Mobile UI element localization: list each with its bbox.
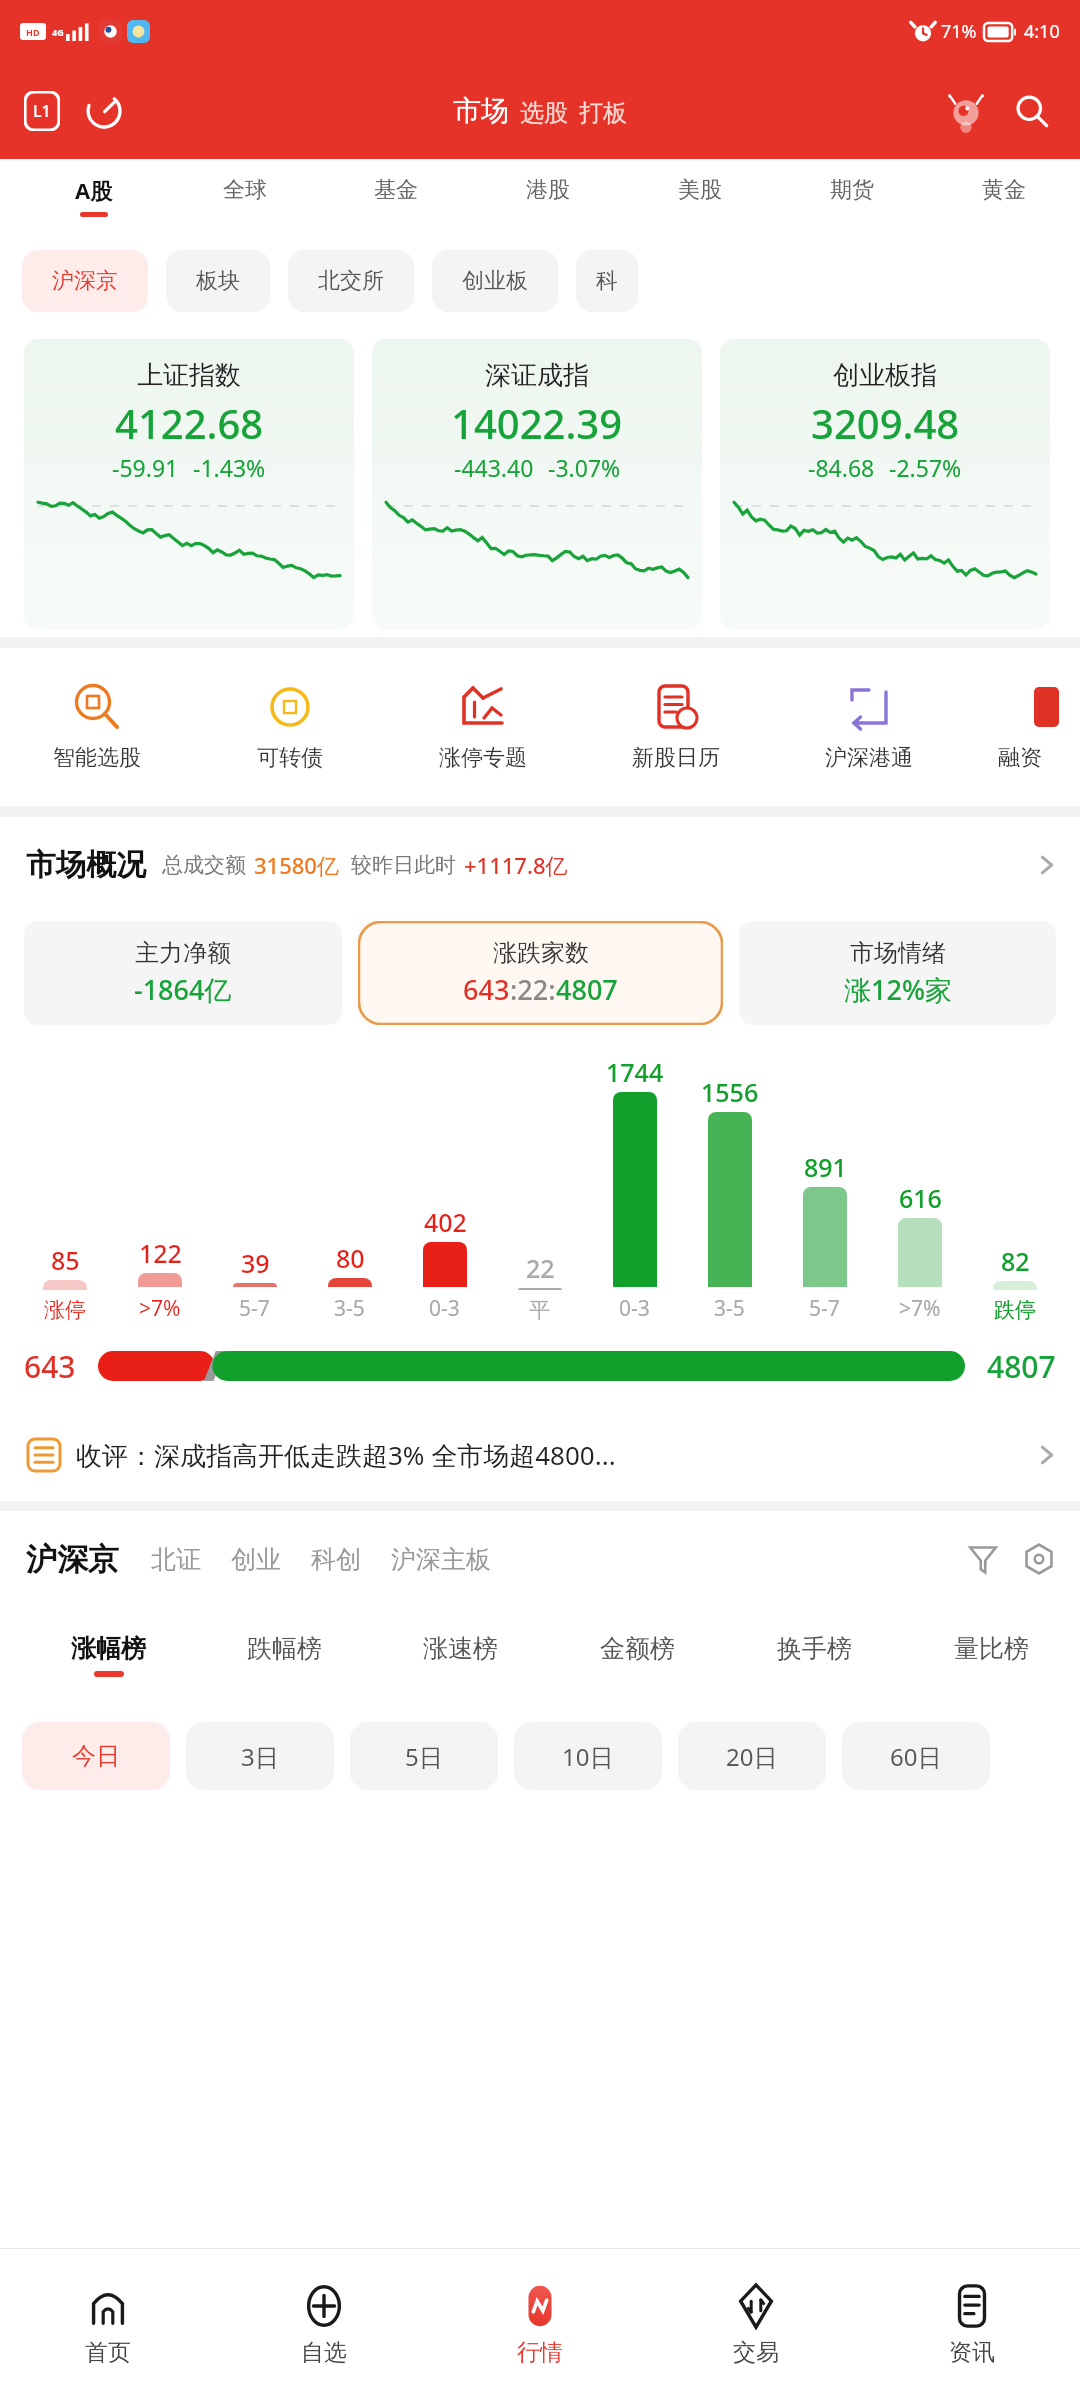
staticText: 0-3	[619, 1294, 650, 1323]
staticText: 39	[241, 1246, 270, 1280]
button[interactable]: 期货	[776, 159, 928, 232]
button[interactable]: A股	[18, 159, 169, 232]
button[interactable]: 涨速榜	[372, 1607, 549, 1703]
button[interactable]: 港股	[472, 159, 624, 232]
button[interactable]: 沪深京	[26, 1540, 119, 1579]
staticText: 平	[529, 1297, 550, 1323]
button[interactable]: 收评：深成指高开低走跌超3% 全市场超4800...	[0, 1409, 1080, 1501]
button[interactable]: 主力净额	[24, 921, 342, 1025]
button[interactable]: 融资	[965, 648, 1075, 806]
staticText: 市场概况	[26, 846, 146, 884]
button[interactable]: 深证成指	[372, 339, 702, 629]
staticText: 跌停	[994, 1297, 1036, 1323]
staticText: 4122.68	[115, 396, 264, 450]
staticText: 黄金	[982, 176, 1026, 204]
staticText: 3-5	[714, 1294, 745, 1323]
button[interactable]: 首页	[0, 2249, 216, 2400]
staticText: 量比榜	[954, 1633, 1029, 1664]
button[interactable]: 5日	[350, 1722, 498, 1790]
staticText: 3日	[241, 1740, 279, 1773]
button[interactable]: 沪深主板	[391, 1544, 491, 1575]
button[interactable]: Filter	[960, 1536, 1006, 1582]
button[interactable]: 可转债	[193, 648, 386, 806]
staticText: >7%	[139, 1294, 181, 1323]
staticText: 31580亿	[254, 850, 339, 880]
staticText: 全球	[223, 176, 267, 204]
staticText: 收评：深成指高开低走跌超3% 全市场超4800...	[76, 1437, 616, 1473]
button[interactable]: 20日	[678, 1722, 826, 1790]
button[interactable]: 市场概况	[0, 817, 1080, 913]
button[interactable]: 智能选股	[0, 648, 193, 806]
staticText: 14022.39	[451, 396, 623, 450]
staticText: 80	[336, 1241, 365, 1275]
button[interactable]: 跌幅榜	[196, 1607, 372, 1703]
button[interactable]: Settings	[1016, 1536, 1062, 1582]
button[interactable]: 全球	[169, 159, 320, 232]
button[interactable]: 交易	[648, 2249, 864, 2400]
staticText: 沪深港通	[825, 744, 913, 772]
button[interactable]: 10日	[514, 1722, 662, 1790]
button[interactable]: Assistant	[940, 85, 992, 137]
staticText: 基金	[374, 176, 418, 204]
staticText: -3.07%	[548, 452, 621, 483]
staticText: 82	[1001, 1244, 1030, 1278]
staticText: 1556	[701, 1075, 759, 1109]
button[interactable]: 科	[576, 250, 638, 312]
button[interactable]: 自选	[216, 2249, 432, 2400]
button[interactable]: 沪深港通	[772, 648, 965, 806]
staticText: 涨幅榜	[71, 1633, 146, 1664]
button[interactable]: 今日	[22, 1722, 170, 1790]
button[interactable]: 北交所	[288, 250, 414, 312]
button[interactable]: 新股日历	[579, 648, 772, 806]
button[interactable]: 60日	[842, 1722, 990, 1790]
staticText: 首页	[85, 2338, 131, 2367]
button[interactable]: 上证指数	[24, 339, 354, 629]
button[interactable]: 3日	[186, 1722, 334, 1790]
staticText: 换手榜	[777, 1633, 852, 1664]
staticText: 1744	[606, 1055, 664, 1089]
staticText: +1117.8亿	[464, 850, 568, 880]
staticText: 科	[596, 267, 618, 295]
staticText: 主力净额	[135, 938, 231, 968]
button[interactable]: Level 1	[22, 89, 62, 133]
button[interactable]: 沪深京	[22, 250, 148, 312]
button[interactable]: 量比榜	[903, 1607, 1080, 1703]
button[interactable]: 涨幅榜	[20, 1607, 196, 1703]
button[interactable]: 科创	[311, 1544, 361, 1575]
button[interactable]: 资讯	[864, 2249, 1080, 2400]
staticText: 涨停	[44, 1297, 86, 1323]
staticText: 涨12%家	[844, 971, 952, 1008]
button[interactable]: 打板	[579, 98, 627, 128]
staticText: 美股	[678, 176, 722, 204]
staticText: -84.68	[808, 452, 875, 483]
button[interactable]: Search	[1006, 85, 1058, 137]
button[interactable]: 涨停专题	[386, 648, 579, 806]
button[interactable]: 创业	[231, 1544, 281, 1575]
button[interactable]: 换手榜	[726, 1607, 903, 1703]
staticText: 港股	[526, 176, 570, 204]
staticText: 616	[899, 1181, 942, 1215]
button[interactable]: 基金	[320, 159, 472, 232]
staticText: 643	[463, 971, 510, 1008]
button[interactable]: 美股	[624, 159, 776, 232]
button[interactable]: 创业板	[432, 250, 558, 312]
staticText: 3209.48	[811, 396, 960, 450]
button[interactable]: 涨跌家数	[358, 921, 723, 1025]
button[interactable]: 创业板指	[720, 339, 1050, 629]
button[interactable]: Night mode	[82, 89, 126, 133]
button[interactable]: 市场情绪	[739, 921, 1056, 1025]
staticText: 5日	[405, 1740, 443, 1773]
staticText: 4G	[52, 26, 64, 38]
staticText: 0-3	[429, 1294, 460, 1323]
button[interactable]: 黄金	[928, 159, 1080, 232]
staticText: 71%	[941, 19, 977, 44]
button[interactable]: 选股	[520, 98, 568, 128]
button[interactable]: 市场	[453, 93, 509, 128]
button[interactable]: 行情	[432, 2249, 648, 2400]
button[interactable]: 北证	[151, 1544, 201, 1575]
staticText: 5-7	[809, 1294, 840, 1323]
staticText: L1	[33, 100, 51, 122]
staticText: 5-7	[239, 1294, 270, 1323]
button[interactable]: 板块	[166, 250, 270, 312]
button[interactable]: 金额榜	[549, 1607, 726, 1703]
